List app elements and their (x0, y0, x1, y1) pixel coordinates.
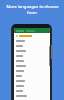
staticText: More languages to choose (6, 4, 59, 10)
button[interactable] (14, 53, 50, 58)
button[interactable] (14, 88, 50, 93)
button[interactable] (14, 83, 50, 88)
button[interactable] (14, 48, 50, 53)
button[interactable] (14, 63, 50, 68)
button[interactable] (14, 68, 50, 73)
button[interactable] (14, 33, 50, 38)
button[interactable] (14, 73, 50, 78)
button[interactable] (14, 93, 50, 98)
button[interactable] (14, 78, 50, 83)
button[interactable] (14, 38, 50, 43)
staticText: from (27, 10, 37, 16)
button[interactable] (14, 43, 50, 48)
button[interactable] (14, 58, 50, 63)
